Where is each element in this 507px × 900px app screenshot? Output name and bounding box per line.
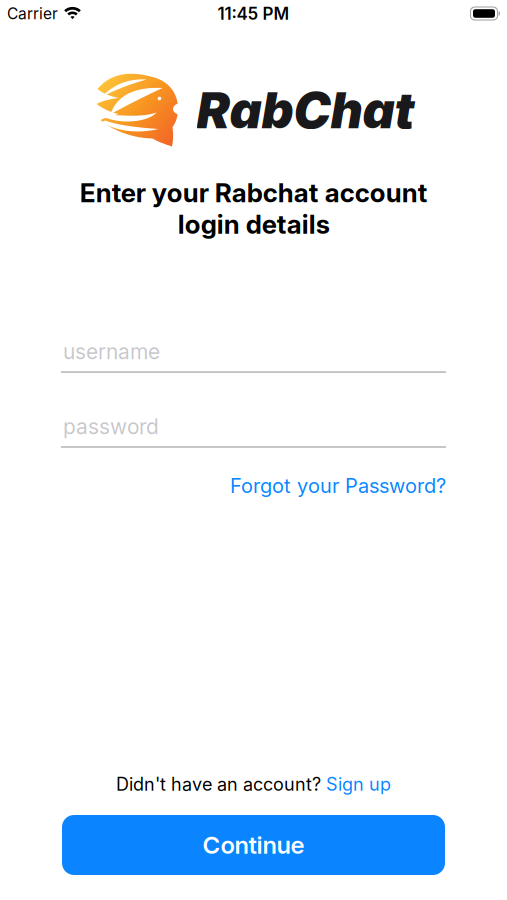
staticText: username bbox=[63, 339, 160, 364]
staticText: 11:45 PM bbox=[217, 3, 289, 24]
staticText: password bbox=[63, 414, 159, 439]
staticText: Forgot your Password? bbox=[230, 474, 446, 498]
staticText: Sign up bbox=[326, 773, 391, 795]
staticText: Carrier bbox=[7, 4, 58, 23]
button[interactable]: Forgot your Password? bbox=[230, 474, 446, 498]
staticText: Didn't have an account? bbox=[116, 773, 321, 795]
staticText: Enter your Rabchat account login details bbox=[79, 177, 427, 240]
button[interactable]: Sign up bbox=[326, 773, 391, 795]
button[interactable]: Continue bbox=[62, 815, 445, 875]
staticText: RabChat bbox=[196, 80, 414, 140]
staticText: Continue bbox=[202, 830, 304, 859]
